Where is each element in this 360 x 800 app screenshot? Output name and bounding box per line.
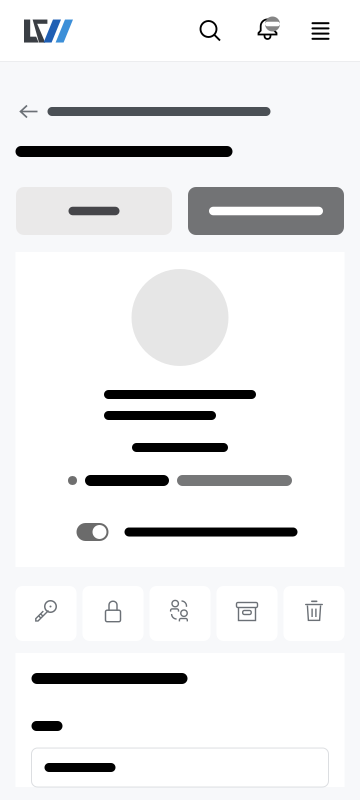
button[interactable] — [16, 187, 172, 235]
button[interactable]: Search — [182, 7, 239, 55]
button[interactable]: Password — [15, 586, 76, 641]
button[interactable]: Toggle — [76, 523, 108, 541]
button[interactable]: Archive — [216, 586, 277, 641]
button[interactable]: Lock — [82, 586, 143, 641]
button[interactable]: Delete — [283, 586, 344, 641]
button[interactable]: Notifications — [239, 7, 296, 55]
button[interactable]: Menu — [296, 7, 345, 55]
button[interactable] — [188, 187, 344, 235]
button[interactable]: Switch user — [149, 586, 210, 641]
button[interactable]: Back — [19, 104, 38, 119]
